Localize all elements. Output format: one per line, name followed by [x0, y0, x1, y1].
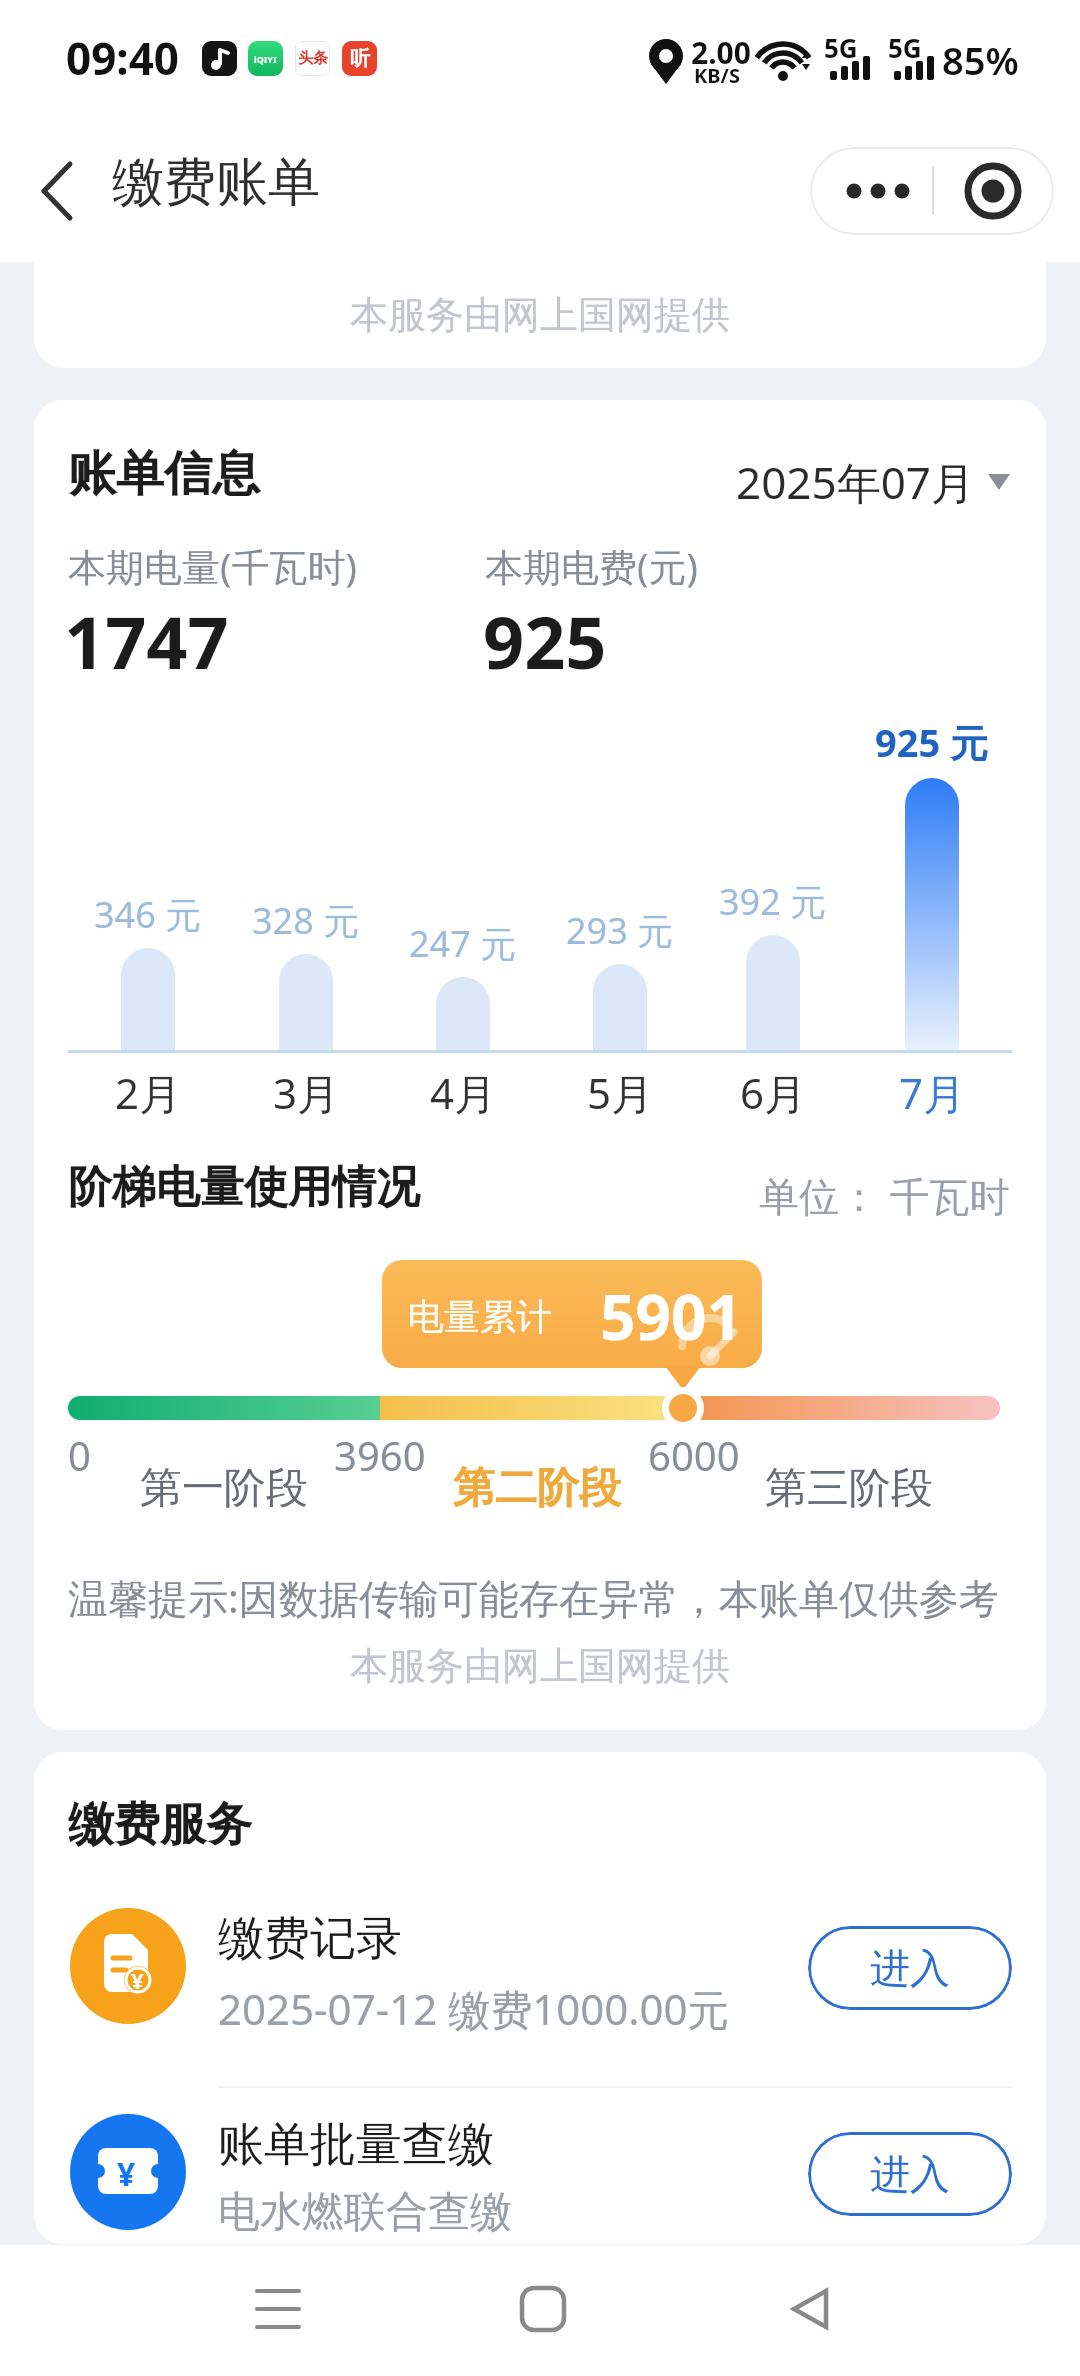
staticText: 本服务由网上国网提供	[350, 291, 730, 339]
staticText: 5G	[888, 30, 922, 65]
staticText: 账单信息	[68, 444, 260, 504]
staticText: 5G	[824, 30, 858, 65]
staticText: KB/S	[694, 62, 740, 89]
staticText: 本期电费(元)	[485, 540, 698, 592]
button[interactable]	[932, 147, 1054, 235]
staticText: ¥	[117, 2152, 136, 2196]
staticText: 09:40	[66, 28, 180, 88]
staticText: 头条	[298, 49, 328, 68]
staticText: 本服务由网上国网提供	[350, 1642, 730, 1690]
staticText: 293 元	[566, 906, 674, 955]
button[interactable]	[810, 147, 932, 235]
staticText: 5901	[600, 1274, 742, 1358]
staticText: 阶梯电量使用情况	[68, 1160, 420, 1215]
staticText: 电水燃联合查缴	[218, 2186, 512, 2239]
staticText: 85%	[942, 34, 1019, 86]
staticText: 2025年07月	[736, 452, 976, 512]
staticText: 第二阶段	[453, 1462, 621, 1515]
staticText: 328 元	[252, 896, 360, 945]
staticText: 6月	[740, 1064, 807, 1121]
button[interactable]	[24, 150, 96, 230]
button[interactable]: 2025年07月	[34, 452, 1010, 512]
button[interactable]: ¥	[34, 1892, 1046, 2042]
staticText: 3960	[334, 1428, 426, 1482]
button[interactable]: 进入	[808, 1926, 1012, 2010]
staticText: 247 元	[409, 919, 517, 968]
staticText: 单位： 千瓦时	[759, 1168, 1010, 1223]
staticText: 第三阶段	[765, 1462, 933, 1515]
staticText: 925	[483, 592, 607, 690]
staticText: 925 元	[875, 716, 989, 768]
staticText: 6000	[648, 1428, 740, 1482]
staticText: ¥	[131, 1965, 144, 1995]
staticText: 2025-07-12 缴费1000.00元	[218, 1980, 730, 2037]
button[interactable]	[770, 2269, 850, 2349]
button[interactable]	[238, 2269, 318, 2349]
staticText: 5月	[587, 1064, 654, 1121]
staticText: 缴费账单	[112, 150, 320, 216]
staticText: 听	[350, 46, 370, 71]
staticText: 4月	[430, 1064, 497, 1121]
staticText: 1747	[64, 592, 229, 690]
staticText: 缴费服务	[68, 1796, 252, 1854]
staticText: 电量累计	[408, 1294, 552, 1339]
staticText: 第一阶段	[140, 1462, 308, 1515]
staticText: 346 元	[94, 890, 202, 939]
staticText: 3月	[273, 1064, 340, 1121]
staticText: 账单批量查缴	[218, 2116, 494, 2174]
staticText: 392 元	[719, 877, 827, 926]
staticText: 进入	[870, 1943, 950, 1993]
staticText: 0	[68, 1428, 91, 1482]
staticText: 2.00	[691, 32, 751, 73]
button[interactable]: ¥	[34, 2098, 1046, 2244]
staticText: 7月	[899, 1064, 966, 1121]
staticText: 进入	[870, 2149, 950, 2199]
staticText: iQIYI	[254, 53, 277, 65]
staticText: 温馨提示:因数据传输可能存在异常，本账单仅供参考	[68, 1570, 999, 1625]
staticText: 2月	[115, 1064, 182, 1121]
staticText: 本期电量(千瓦时)	[68, 540, 357, 592]
button[interactable]: 进入	[808, 2132, 1012, 2216]
staticText: 缴费记录	[218, 1910, 402, 1968]
button[interactable]	[503, 2269, 583, 2349]
